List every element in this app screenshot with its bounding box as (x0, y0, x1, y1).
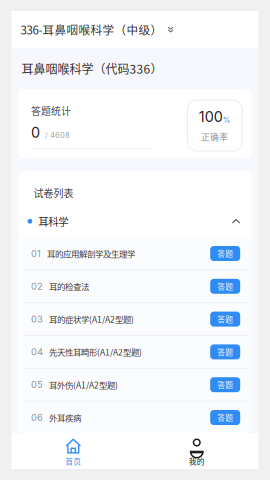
staticText: 答题 (217, 281, 233, 292)
staticText: 耳鼻咽喉科学（代码336） (21, 60, 162, 77)
button[interactable]: 05 (18, 369, 251, 401)
staticText: 耳的检查法 (49, 280, 89, 292)
staticText: 答题 (217, 248, 233, 259)
staticText: 答题 (217, 379, 233, 390)
staticText: 答题 (217, 412, 233, 423)
button[interactable]: 我的 (135, 433, 258, 469)
button[interactable]: 01 (18, 237, 251, 269)
button[interactable]: 首页 (11, 433, 135, 469)
staticText: 答题 (217, 346, 233, 357)
staticText: 正确率 (201, 130, 228, 143)
staticText: 336-耳鼻咽喉科学（中级） (20, 21, 162, 38)
staticText: 03 (31, 313, 43, 325)
staticText: 耳外伤(A1/A2型题) (49, 379, 118, 391)
staticText: 首页 (65, 456, 81, 467)
staticText: 02 (31, 281, 43, 292)
staticText: 外耳疾病 (49, 411, 81, 424)
button[interactable]: 06 (18, 401, 251, 433)
staticText: 答题统计 (31, 103, 71, 118)
staticText: 耳的应用解剖学及生理学 (47, 247, 135, 260)
staticText: 我的 (189, 456, 205, 467)
staticText: 04 (31, 346, 43, 358)
staticText: 100 (199, 108, 223, 125)
staticText: 01 (31, 248, 41, 259)
staticText: % (223, 115, 231, 125)
staticText: 先天性耳畸形(A1/A2型题) (49, 346, 142, 358)
button[interactable]: 04 (18, 336, 251, 368)
staticText: / 4608 (45, 131, 70, 140)
staticText: 05 (31, 379, 43, 390)
button[interactable]: 02 (18, 270, 251, 302)
staticText: 06 (31, 412, 43, 423)
staticText: 耳科学 (38, 214, 68, 229)
staticText: 试卷列表 (33, 186, 73, 200)
staticText: 耳的症状学(A1/A2型题) (49, 313, 134, 325)
button[interactable]: 03 (18, 303, 251, 335)
staticText: 答题 (217, 313, 233, 325)
staticText: 0 (31, 124, 40, 141)
button[interactable]: 耳科学 (18, 205, 251, 237)
